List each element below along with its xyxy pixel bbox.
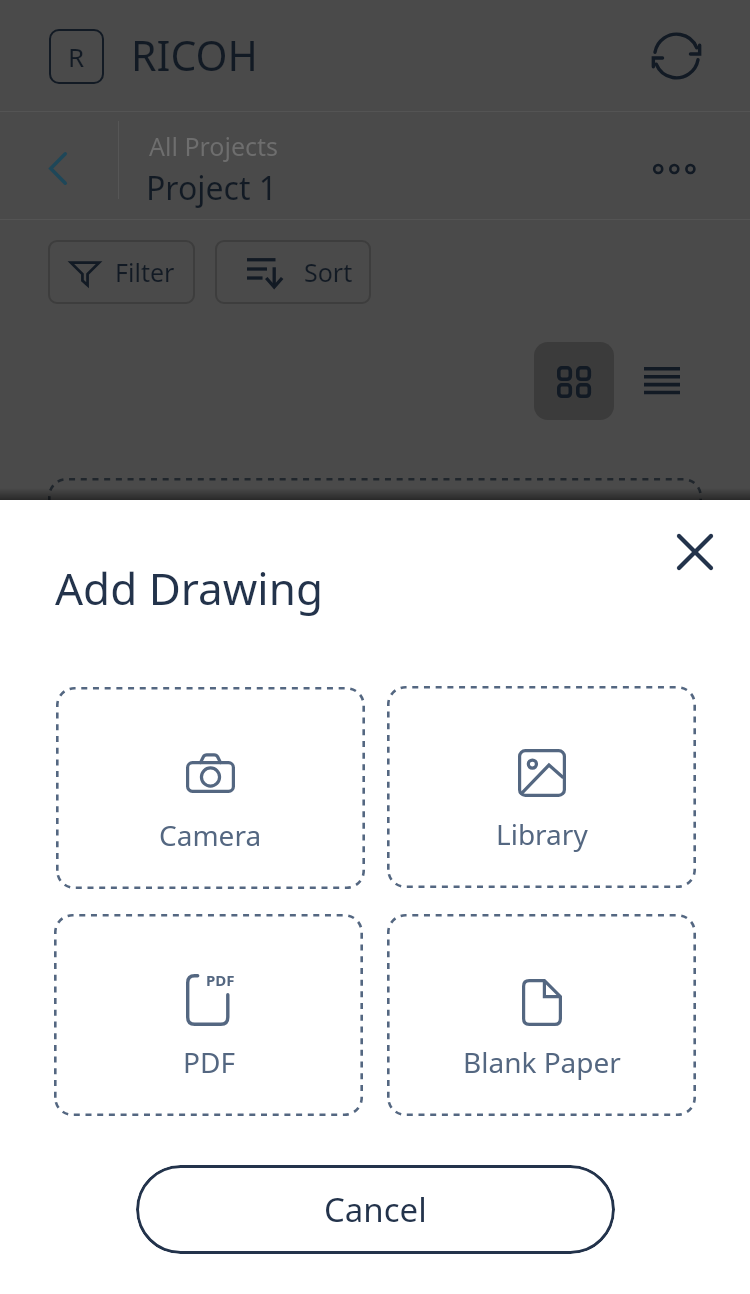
staticText: Library — [496, 815, 588, 853]
button[interactable]: Sort — [215, 240, 371, 304]
staticText: Camera — [159, 816, 262, 854]
button[interactable]: Blank Paper — [387, 914, 696, 1116]
staticText: Filter — [115, 255, 175, 289]
staticText: Blank Paper — [463, 1043, 621, 1081]
staticText: Cancel — [324, 1187, 427, 1232]
button[interactable]: Close — [662, 519, 728, 585]
button[interactable]: More options — [643, 135, 711, 203]
staticText: PDF — [206, 970, 235, 990]
staticText: Sort — [304, 255, 353, 289]
button[interactable]: List view — [624, 342, 700, 420]
staticText: Project 1 — [146, 166, 278, 210]
staticText: PDF — [183, 1043, 235, 1081]
staticText: RICOH — [131, 27, 258, 83]
button[interactable]: Sync — [645, 23, 711, 89]
staticText: R — [68, 39, 85, 74]
button[interactable]: Camera — [56, 687, 365, 889]
button[interactable]: Library — [387, 686, 696, 888]
staticText: All Projects — [149, 129, 279, 163]
staticText: Add Drawing — [55, 558, 323, 618]
button[interactable]: Grid view — [534, 342, 614, 420]
button[interactable]: Filter — [48, 240, 195, 304]
button[interactable]: Cancel — [136, 1165, 615, 1254]
button[interactable]: PDF — [54, 914, 363, 1116]
button[interactable]: Back — [35, 128, 81, 208]
